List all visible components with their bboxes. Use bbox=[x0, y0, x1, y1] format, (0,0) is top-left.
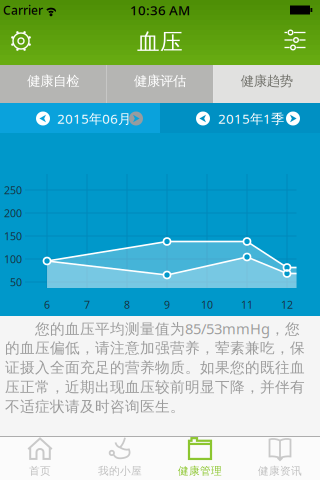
button[interactable]: Next quarter bbox=[282, 107, 304, 129]
staticText: 10 bbox=[201, 297, 213, 312]
staticText: 8 bbox=[124, 297, 130, 312]
staticText: 2015年06月 bbox=[57, 110, 131, 127]
button[interactable]: 健康管理 bbox=[160, 437, 240, 480]
staticText: 不适症状请及时咨询医生。 bbox=[5, 397, 185, 415]
button[interactable]: Filter bbox=[275, 21, 315, 61]
staticText: 9 bbox=[164, 297, 170, 312]
staticText: 11 bbox=[241, 297, 253, 312]
button[interactable]: Previous quarter bbox=[192, 107, 214, 129]
button[interactable]: Previous month bbox=[32, 107, 54, 129]
staticText: 证摄入全面充足的营养物质。如果您的既往血 bbox=[5, 358, 305, 376]
button[interactable]: 健康资讯 bbox=[240, 437, 320, 480]
staticText: 血压 bbox=[137, 28, 183, 56]
staticText: 100 bbox=[4, 252, 22, 266]
staticText: Carrier bbox=[3, 2, 43, 18]
staticText: 健康评估 bbox=[134, 73, 186, 89]
staticText: 健康管理 bbox=[178, 464, 222, 477]
staticText: 您的血压平均测量值为85/53mmHg，您 bbox=[35, 319, 300, 338]
staticText: 健康趋势 bbox=[241, 73, 293, 89]
button[interactable]: 我的小屋 bbox=[80, 437, 160, 480]
staticText: 健康资讯 bbox=[258, 464, 302, 477]
staticText: 6 bbox=[44, 297, 50, 312]
staticText: 7 bbox=[84, 297, 90, 312]
staticText: 12 bbox=[281, 297, 293, 312]
button[interactable]: 健康趋势 bbox=[213, 65, 320, 103]
staticText: 10:36 AM bbox=[130, 1, 190, 19]
staticText: 的血压偏低，请注意加强营养，荤素兼吃，保 bbox=[5, 339, 305, 357]
staticText: 首页 bbox=[29, 464, 51, 477]
staticText: 150 bbox=[4, 229, 22, 243]
button[interactable]: Settings bbox=[1, 21, 41, 61]
staticText: 250 bbox=[4, 183, 22, 197]
staticText: 2015年1季 bbox=[218, 110, 284, 127]
button[interactable]: 健康自检 bbox=[0, 65, 107, 103]
button[interactable]: 首页 bbox=[0, 437, 80, 480]
staticText: 健康自检 bbox=[27, 73, 79, 89]
button[interactable]: 健康评估 bbox=[107, 65, 213, 103]
staticText: 200 bbox=[4, 206, 22, 220]
staticText: 我的小屋 bbox=[98, 464, 142, 477]
staticText: 压正常，近期出现血压较前明显下降，并伴有 bbox=[5, 378, 305, 396]
button[interactable]: Next month bbox=[125, 107, 147, 129]
staticText: 50 bbox=[10, 275, 22, 289]
